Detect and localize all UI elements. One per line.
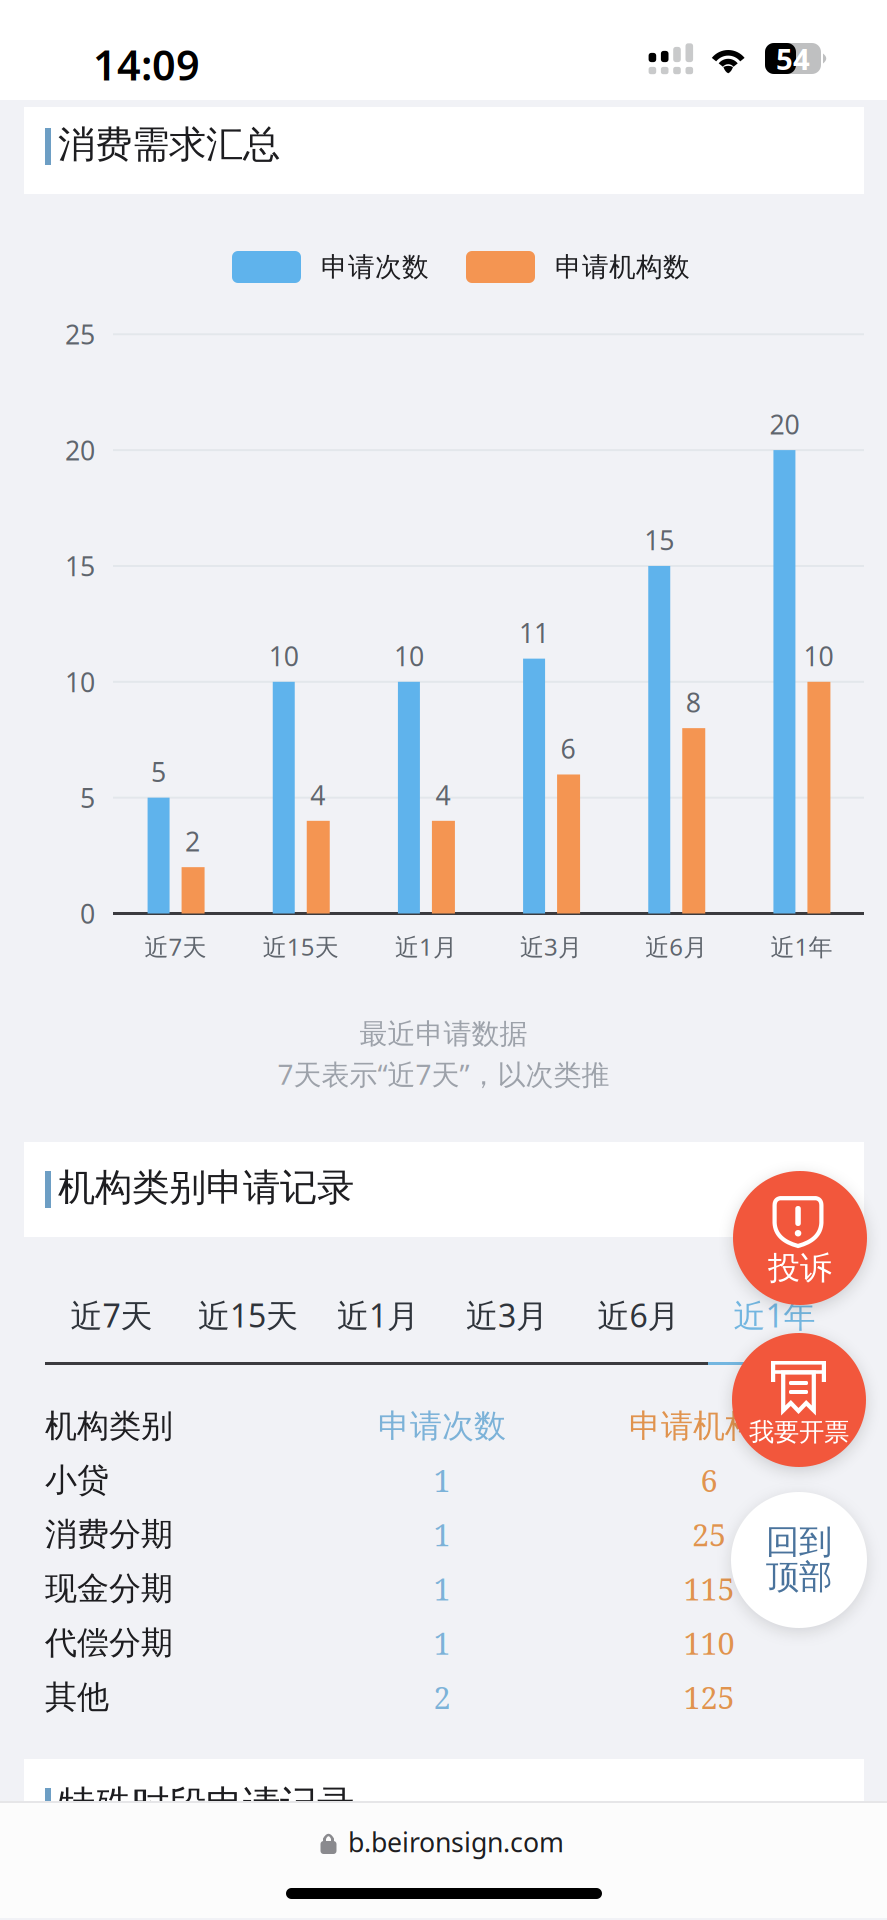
staticText: 10 (803, 638, 833, 673)
staticText: 4 (310, 777, 325, 812)
staticText: 10 (65, 664, 95, 699)
button[interactable]: 回到 (731, 1492, 867, 1628)
staticText: 申请次数 (378, 1406, 506, 1446)
staticText: 近15天 (263, 931, 339, 962)
staticText: 申请机构数 (555, 251, 690, 283)
button[interactable]: 近7天 (51, 1283, 171, 1347)
button[interactable]: 近6月 (578, 1283, 698, 1347)
staticText: 54 (776, 39, 810, 78)
staticText: 我要开票 (749, 1416, 849, 1447)
staticText: 1 (433, 1568, 450, 1609)
staticText: 2 (185, 823, 200, 859)
staticText: 2 (433, 1676, 450, 1718)
staticText: 申请次数 (321, 251, 429, 283)
button[interactable]: 投诉 (733, 1171, 867, 1305)
staticText: 其他 (45, 1677, 109, 1717)
staticText: 特殊时段申请记录 (58, 1782, 354, 1827)
staticText: 6 (561, 731, 576, 766)
staticText: 10 (269, 638, 299, 673)
staticText: 15 (644, 522, 674, 558)
staticText: 近1月 (337, 1294, 419, 1336)
staticText: 1 (433, 1513, 450, 1555)
staticText: 7天表示“近7天”，以次类推 (277, 1055, 609, 1093)
staticText: 25 (65, 316, 95, 352)
button[interactable]: 我要开票 (732, 1333, 866, 1467)
staticText: 现金分期 (45, 1569, 173, 1608)
staticText: 申请机构数 (629, 1406, 789, 1446)
staticText: 顶部 (766, 1556, 832, 1597)
staticText: 回到 (766, 1521, 832, 1562)
staticText: 近3月 (520, 931, 582, 962)
button[interactable]: 近1年 (714, 1283, 834, 1347)
staticText: 1 (433, 1622, 450, 1664)
staticText: 5 (80, 780, 95, 815)
button[interactable]: 近15天 (188, 1283, 308, 1347)
staticText: 投诉 (768, 1248, 832, 1288)
staticText: 4 (435, 777, 450, 812)
staticText: 近6月 (597, 1294, 679, 1336)
staticText: b.beironsign.com (348, 1824, 564, 1860)
staticText: 近3月 (466, 1294, 548, 1336)
button[interactable]: b.beironsign.com (0, 1801, 887, 1861)
staticText: 11 (519, 615, 549, 650)
staticText: 115 (683, 1568, 734, 1609)
staticText: 消费分期 (45, 1515, 173, 1554)
staticText: 近6月 (645, 931, 707, 962)
staticText: 近15天 (198, 1294, 298, 1336)
staticText: 20 (769, 406, 799, 442)
staticText: 5 (151, 754, 166, 789)
staticText: 机构类别申请记录 (58, 1165, 354, 1210)
staticText: 1 (433, 1459, 450, 1501)
staticText: 6 (700, 1459, 717, 1501)
staticText: 最近申请数据 (359, 1017, 527, 1051)
staticText: 8 (686, 684, 701, 720)
staticText: 25 (692, 1513, 726, 1555)
staticText: 机构类别 (45, 1406, 173, 1446)
staticText: 0 (80, 896, 95, 931)
staticText: 近1月 (395, 931, 457, 962)
staticText: 110 (683, 1622, 734, 1664)
staticText: 20 (65, 432, 95, 468)
staticText: 近1年 (733, 1294, 815, 1336)
staticText: 代偿分期 (45, 1623, 173, 1662)
staticText: 近7天 (145, 931, 207, 962)
button[interactable]: 近1月 (318, 1283, 438, 1347)
staticText: 125 (683, 1676, 734, 1718)
staticText: 小贷 (45, 1460, 109, 1500)
button[interactable]: 近3月 (447, 1283, 567, 1347)
staticText: 近7天 (70, 1294, 152, 1336)
staticText: 近1年 (770, 931, 832, 962)
staticText: 消费需求汇总 (58, 122, 280, 167)
staticText: 10 (394, 638, 424, 673)
staticText: 14:09 (93, 37, 200, 92)
staticText: 15 (65, 548, 95, 584)
